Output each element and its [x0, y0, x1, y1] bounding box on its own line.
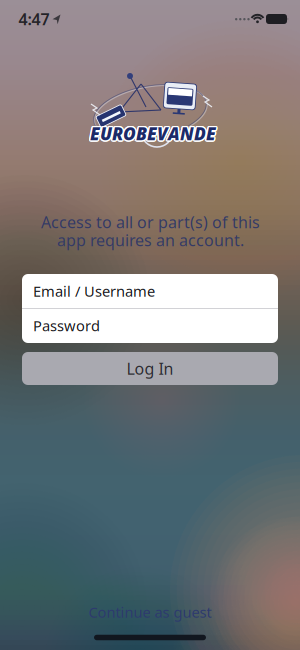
staticText: EUROBEVANDE	[90, 122, 216, 145]
staticText: Continue as guest	[88, 602, 211, 622]
staticText: Email / Username	[33, 281, 155, 301]
staticText: EUROBEVANDE	[89, 121, 215, 144]
button[interactable]: Log In	[22, 352, 278, 385]
staticText: EUROBEVANDE	[91, 123, 217, 146]
staticText: EUROBEVANDE	[89, 123, 215, 146]
staticText: Password	[33, 316, 100, 335]
staticText: Access to all or part(s) of this	[41, 211, 260, 233]
button[interactable]: Email / Username	[22, 274, 278, 308]
button[interactable]: Continue as guest	[80, 596, 219, 628]
staticText: EUROBEVANDE	[88, 122, 214, 145]
staticText: EUROBEVANDE	[91, 121, 217, 144]
staticText: 4:47	[18, 8, 49, 30]
button[interactable]: Password	[22, 308, 278, 342]
staticText: EUROBEVANDE	[90, 123, 216, 146]
staticText: EUROBEVANDE	[89, 121, 215, 144]
staticText: EUROBEVANDE	[90, 120, 216, 143]
staticText: EUROBEVANDE	[91, 123, 217, 146]
staticText: app requires an account.	[57, 229, 244, 251]
staticText: EUROBEVANDE	[89, 123, 215, 146]
staticText: EUROBEVANDE	[91, 121, 217, 144]
staticText: EUROBEVANDE	[91, 122, 217, 145]
staticText: Log In	[126, 358, 173, 379]
